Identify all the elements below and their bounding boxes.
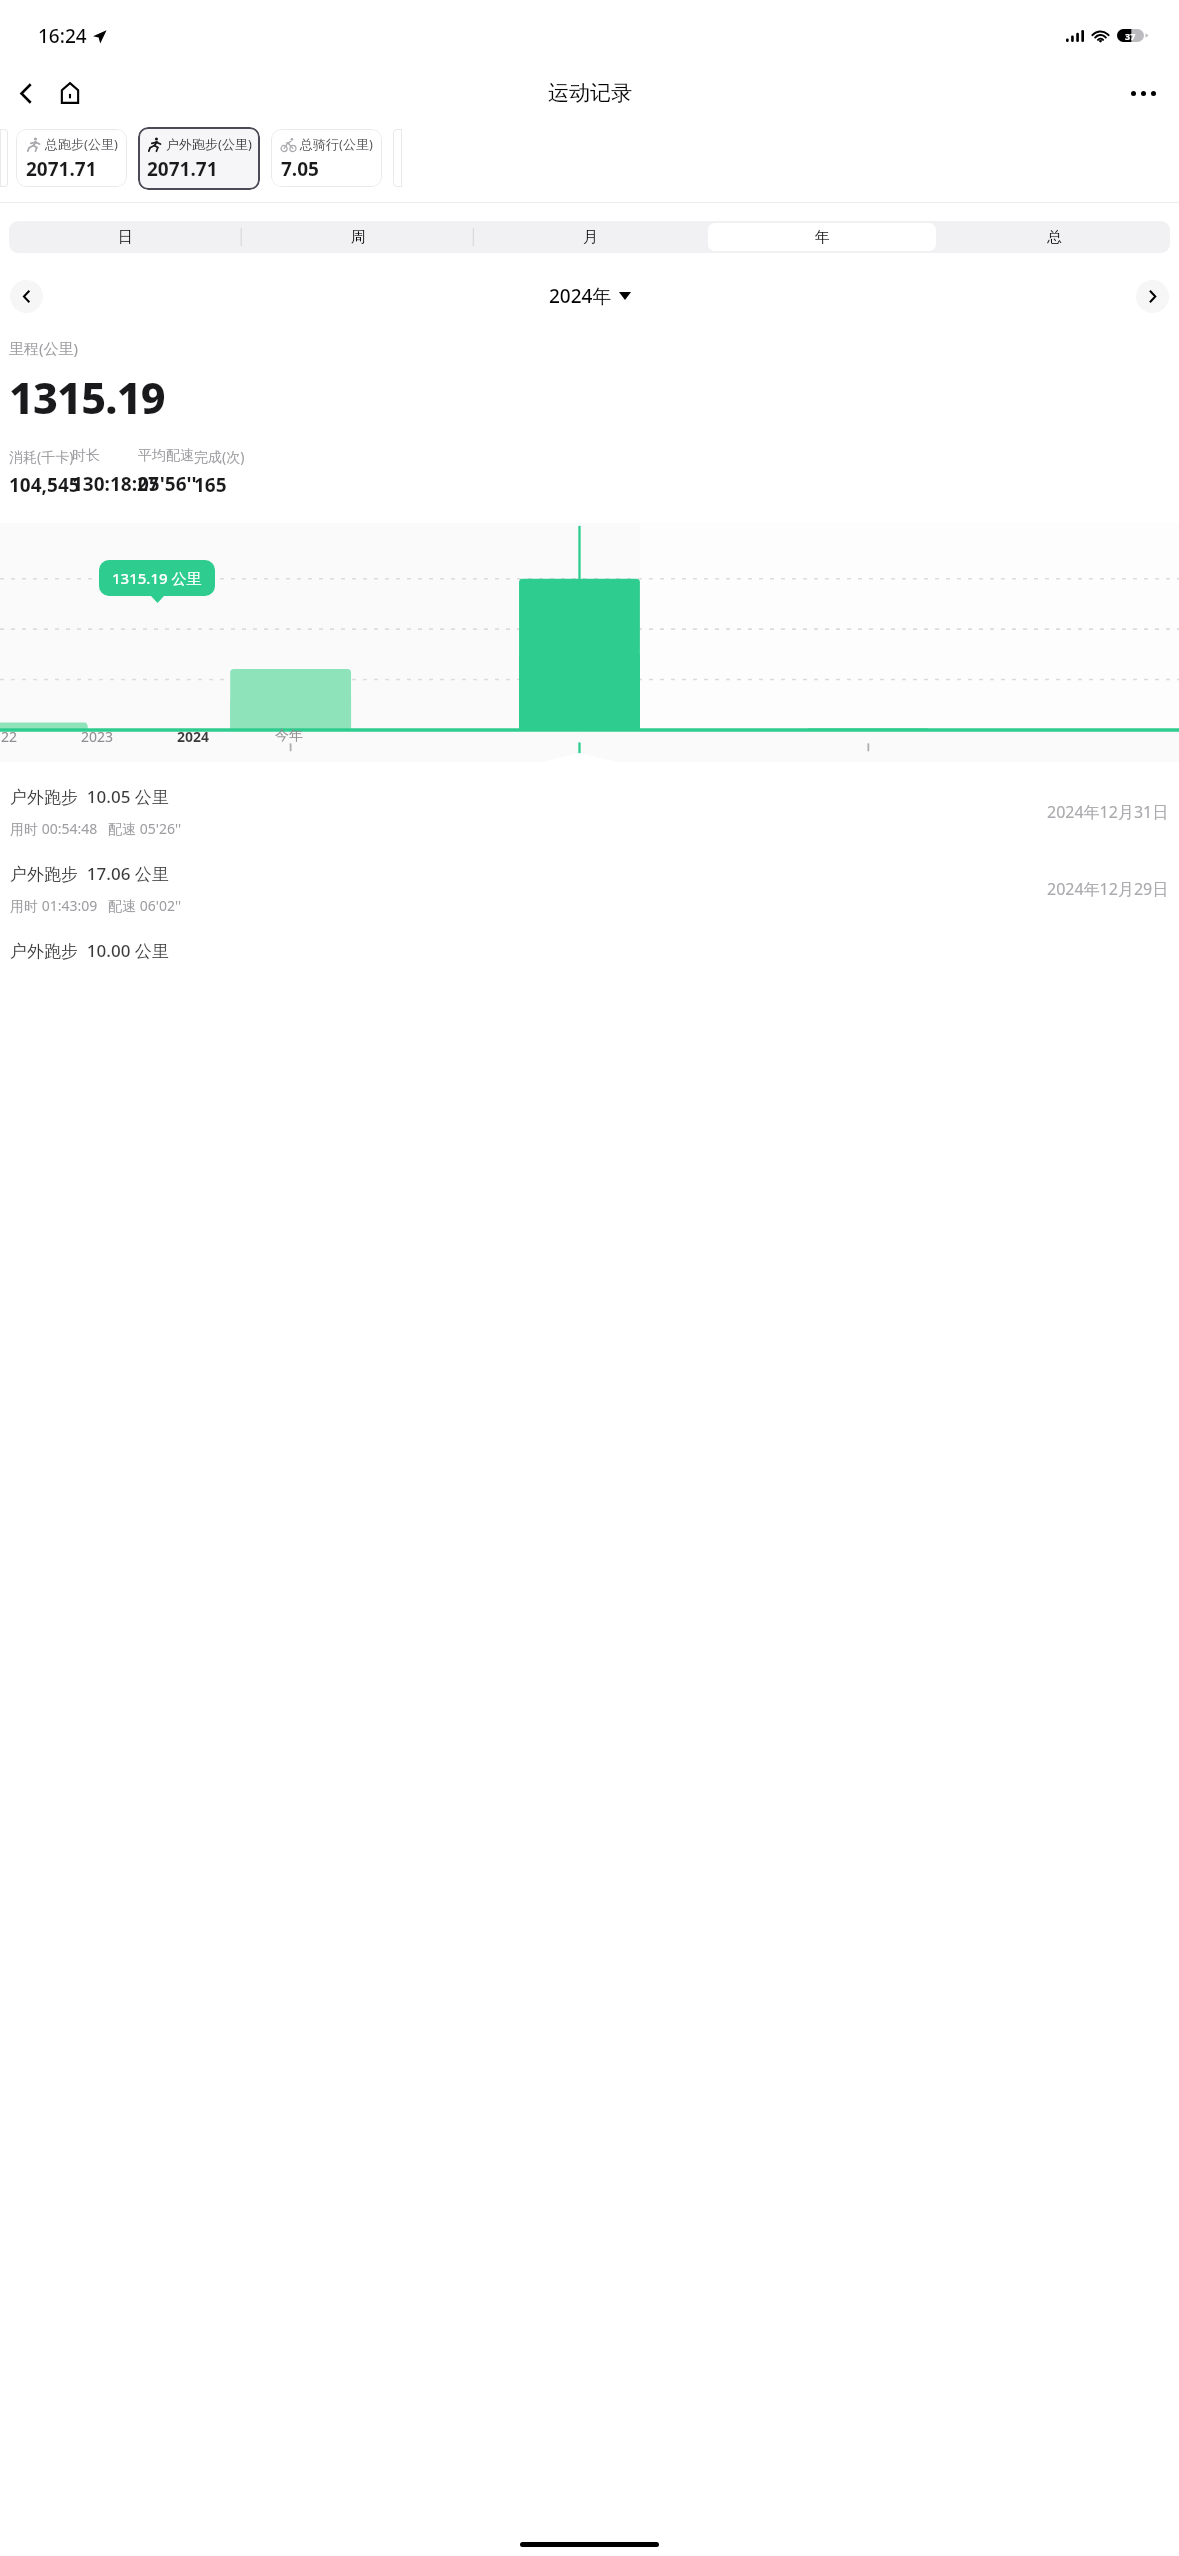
button[interactable]: 年 [708, 223, 936, 251]
staticText: 1315.19 公里 [112, 568, 202, 588]
staticText: 05'56'' [138, 471, 197, 497]
button[interactable]: Home [48, 71, 92, 115]
button[interactable]: 户外跑步(公里) [138, 127, 260, 190]
staticText: 2024 [173, 727, 213, 746]
button[interactable]: 2024年 [549, 283, 631, 309]
staticText: 130:18:27 [72, 471, 159, 497]
staticText: 2071.71 [147, 156, 218, 182]
staticText: 户外跑步 17.06 公里 [10, 862, 169, 885]
staticText: 年 [815, 228, 830, 247]
staticText: 1315.19 [9, 368, 165, 427]
staticText: 165 [194, 472, 227, 498]
staticText: 平均配速 [138, 447, 194, 465]
staticText: 户外跑步(公里) [166, 135, 252, 153]
staticText: 用时 01:43:09 配速 06'02'' [10, 896, 182, 915]
button[interactable]: Previous year [10, 280, 43, 313]
button[interactable]: 总 [940, 223, 1168, 251]
staticText: 月 [583, 228, 598, 247]
staticText: 消耗(千卡) [9, 447, 74, 466]
button[interactable]: 月 [476, 223, 704, 251]
button[interactable]: 总骑行(公里) [271, 129, 382, 187]
staticText: 2024年12月29日 [1047, 878, 1169, 900]
button[interactable]: 户外跑步 17.06 公里 [0, 862, 1179, 915]
staticText: 22 [0, 727, 29, 746]
staticText: 104,545 [9, 472, 80, 498]
staticText: 37 [1125, 30, 1136, 42]
staticText: 总跑步(公里) [45, 135, 118, 153]
staticText: 2023 [77, 727, 117, 746]
staticText: 2024年 [549, 283, 612, 309]
staticText: 户外跑步 10.00 公里 [10, 939, 169, 961]
staticText: 运动记录 [548, 80, 632, 106]
staticText: 2024年12月31日 [1047, 801, 1169, 823]
staticText: 完成(次) [194, 447, 245, 466]
button[interactable]: Back [4, 71, 48, 115]
button[interactable]: 户外跑步 10.05 公里 [0, 785, 1179, 838]
button[interactable]: More options [1121, 71, 1165, 115]
staticText: 里程(公里) [9, 338, 79, 358]
button[interactable]: 总跑步(公里) [16, 129, 127, 187]
staticText: 今年 [269, 727, 309, 745]
button[interactable]: 周 [244, 223, 472, 251]
button[interactable]: Next year [1136, 280, 1169, 313]
staticText: 2071.71 [26, 156, 97, 182]
staticText: 周 [351, 228, 366, 247]
staticText: 7.05 [281, 156, 319, 182]
staticText: 时长 [72, 447, 100, 465]
staticText: 用时 00:54:48 配速 05'26'' [10, 819, 182, 838]
staticText: 总 [1047, 228, 1062, 247]
staticText: 16:24 [38, 23, 87, 49]
staticText: 日 [118, 228, 133, 247]
staticText: 总骑行(公里) [300, 135, 373, 153]
button[interactable]: 日 [11, 223, 240, 251]
staticText: 户外跑步 10.05 公里 [10, 785, 169, 808]
